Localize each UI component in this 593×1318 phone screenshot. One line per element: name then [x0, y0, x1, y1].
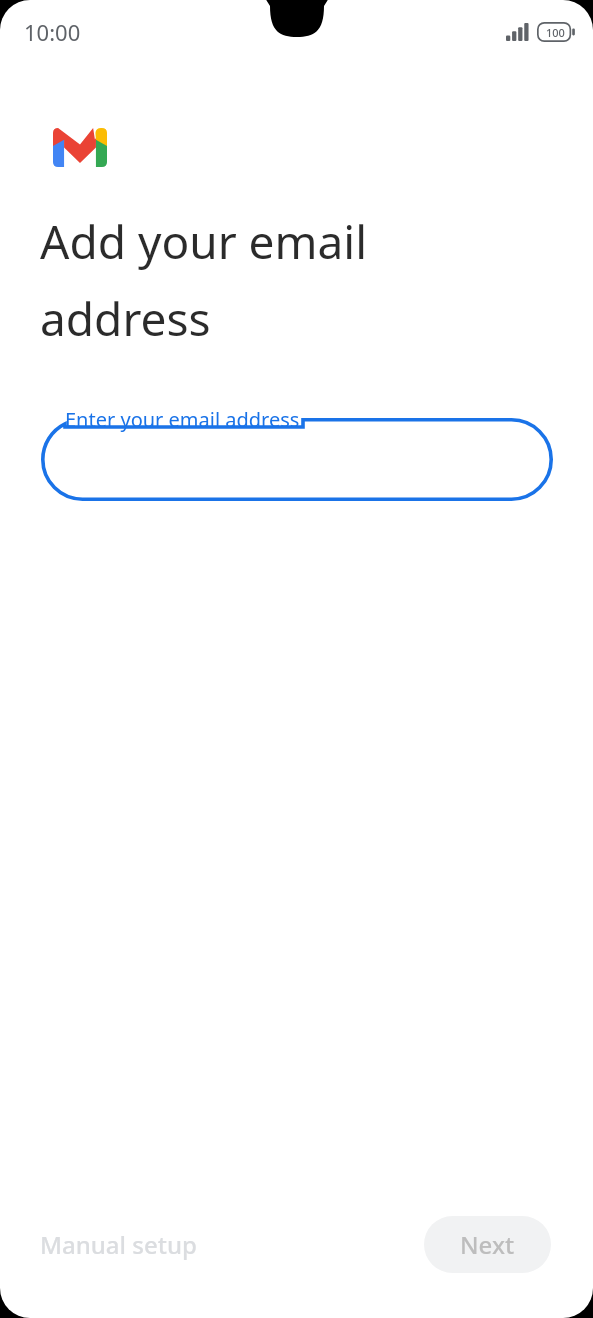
- staticText: Manual setup: [40, 1228, 197, 1261]
- button[interactable]: Manual setup: [28, 1218, 209, 1271]
- other: Gmail: [53, 128, 107, 167]
- staticText: Add your email address: [40, 210, 368, 349]
- button[interactable]: Next: [424, 1216, 551, 1273]
- button[interactable]: Enter your email address: [41, 399, 553, 505]
- staticText: 10:00: [24, 17, 81, 47]
- staticText: Enter your email address: [65, 406, 300, 433]
- staticText: Next: [460, 1228, 515, 1261]
- staticText: 100: [546, 25, 565, 40]
